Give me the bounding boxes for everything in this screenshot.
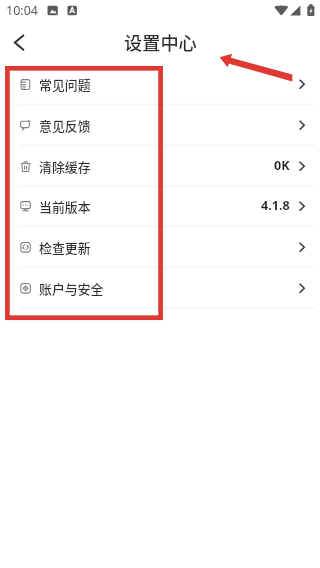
staticText: 设置中心 — [124, 29, 197, 55]
button[interactable]: Back — [0, 24, 38, 62]
button[interactable]: 常见问题 — [0, 63, 320, 104]
button[interactable]: 清除缓存 — [0, 145, 320, 186]
staticText: 当前版本 — [39, 197, 91, 216]
button[interactable]: 检查更新 — [0, 226, 320, 267]
button[interactable]: 当前版本 — [0, 185, 320, 226]
staticText: 清除缓存 — [39, 157, 91, 176]
staticText: 4.1.8 — [261, 197, 290, 214]
button[interactable]: 账户与安全 — [0, 267, 320, 308]
staticText: 常见问题 — [39, 75, 91, 94]
staticText: 检查更新 — [39, 238, 91, 257]
staticText: 意见反馈 — [39, 116, 91, 135]
staticText: 0K — [274, 157, 290, 174]
button[interactable]: 意见反馈 — [0, 104, 320, 145]
staticText: 10:04 — [6, 2, 38, 19]
staticText: 账户与安全 — [39, 279, 104, 298]
